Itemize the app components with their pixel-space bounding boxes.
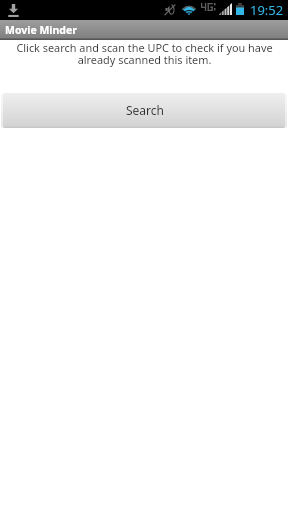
other: Wi-Fi connected — [182, 4, 196, 15]
staticText: Search — [126, 102, 164, 118]
staticText: 19:52 — [250, 1, 284, 19]
other: Download in progress — [8, 4, 19, 17]
staticText: Movie Minder — [5, 23, 77, 37]
button[interactable]: Search — [3, 93, 285, 128]
staticText: Click search and scan the UPC to check i… — [12, 40, 277, 67]
other: Silent mode — [165, 4, 175, 15]
other: 4G — [201, 3, 218, 11]
other: Battery — [236, 3, 244, 15]
other: Mobile signal strength — [219, 3, 232, 15]
